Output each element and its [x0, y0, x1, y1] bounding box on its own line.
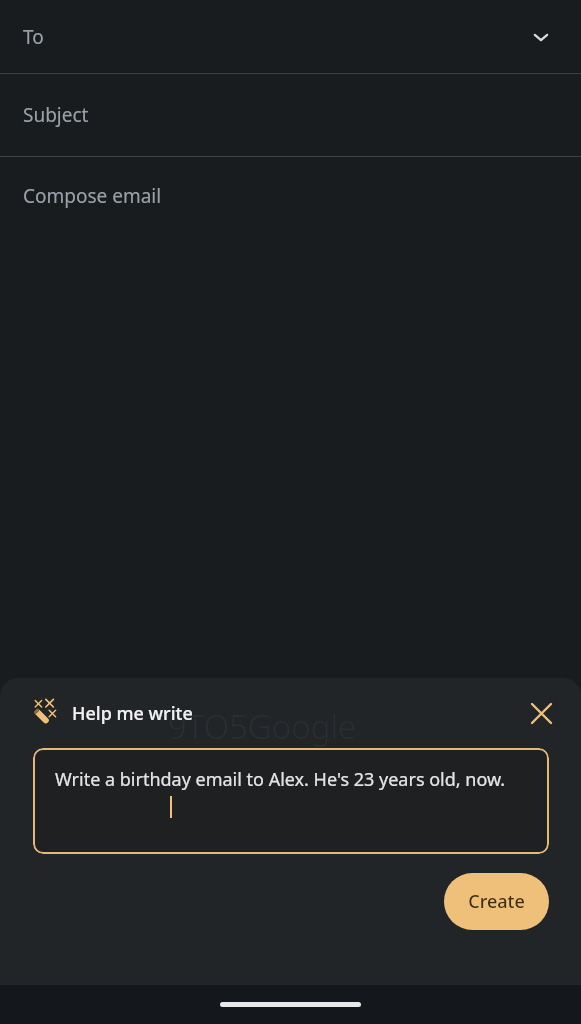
button[interactable]: Write a birthday email to Alex. He's 23 …: [33, 748, 549, 854]
button[interactable]: Create: [444, 873, 549, 930]
button[interactable]: Compose email: [0, 157, 581, 247]
staticText: To: [23, 24, 44, 50]
button[interactable]: Subject: [0, 74, 581, 156]
staticText: Write a birthday email to Alex. He's 23 …: [55, 767, 506, 792]
staticText: 9TO5Google: [168, 704, 357, 749]
staticText: Subject: [23, 102, 89, 128]
button[interactable]: Expand recipients: [521, 17, 561, 57]
button[interactable]: To: [0, 0, 581, 73]
staticText: Help me write: [72, 701, 193, 726]
staticText: Compose email: [23, 183, 162, 209]
staticText: Create: [468, 889, 525, 914]
button[interactable]: Close: [519, 691, 563, 735]
